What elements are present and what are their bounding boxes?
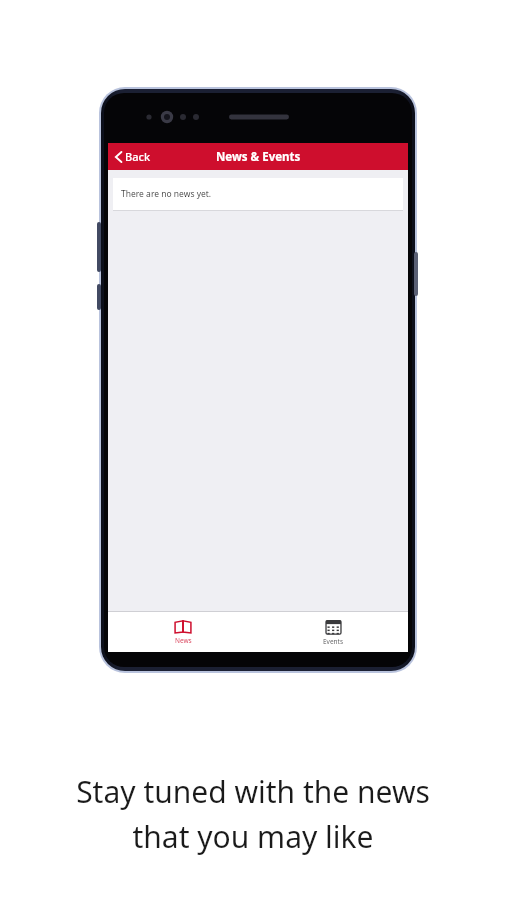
other: Volume: [97, 222, 101, 272]
other: Power: [414, 252, 418, 296]
button[interactable]: News: [108, 612, 258, 652]
button[interactable]: There are no news yet.: [113, 178, 403, 210]
staticText: There are no news yet.: [121, 188, 212, 200]
button[interactable]: Back: [108, 143, 161, 170]
staticText: Back: [125, 149, 151, 164]
staticText: Stay tuned with the news: [76, 771, 430, 812]
staticText: Events: [323, 637, 344, 646]
button[interactable]: Events: [258, 612, 408, 652]
staticText: that you may like: [132, 816, 374, 857]
staticText: News & Events: [216, 149, 301, 165]
other: Assistant: [97, 284, 101, 310]
staticText: News: [175, 636, 192, 645]
